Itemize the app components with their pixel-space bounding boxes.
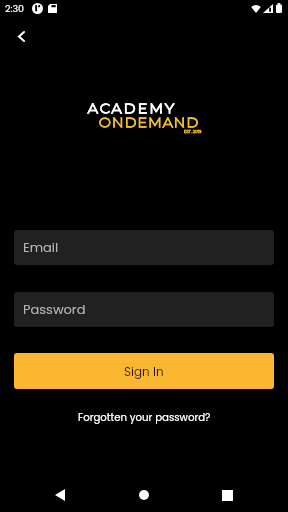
staticText: EST. 2019 <box>184 130 202 134</box>
button[interactable]: Back <box>38 478 82 512</box>
button[interactable]: Recent apps <box>205 478 249 512</box>
button[interactable]: Password <box>14 292 274 327</box>
button[interactable]: Email <box>14 230 274 265</box>
staticText: ONDEMAND <box>99 113 200 130</box>
staticText: 2:30 <box>5 2 25 15</box>
staticText: ACADEMY <box>88 99 177 116</box>
staticText: ONDEMAND <box>99 113 200 130</box>
staticText: Sign In <box>124 363 164 380</box>
staticText: ACADEMY <box>88 99 177 116</box>
staticText: EST. 2019 <box>184 130 202 134</box>
staticText: Email <box>23 238 59 256</box>
staticText: Password <box>23 300 86 318</box>
button[interactable]: Home <box>122 478 166 512</box>
button[interactable]: Forgotten your password? <box>72 407 217 427</box>
button[interactable]: Back <box>8 18 34 54</box>
staticText: Forgotten your password? <box>78 410 211 424</box>
button[interactable]: Sign In <box>14 353 274 389</box>
